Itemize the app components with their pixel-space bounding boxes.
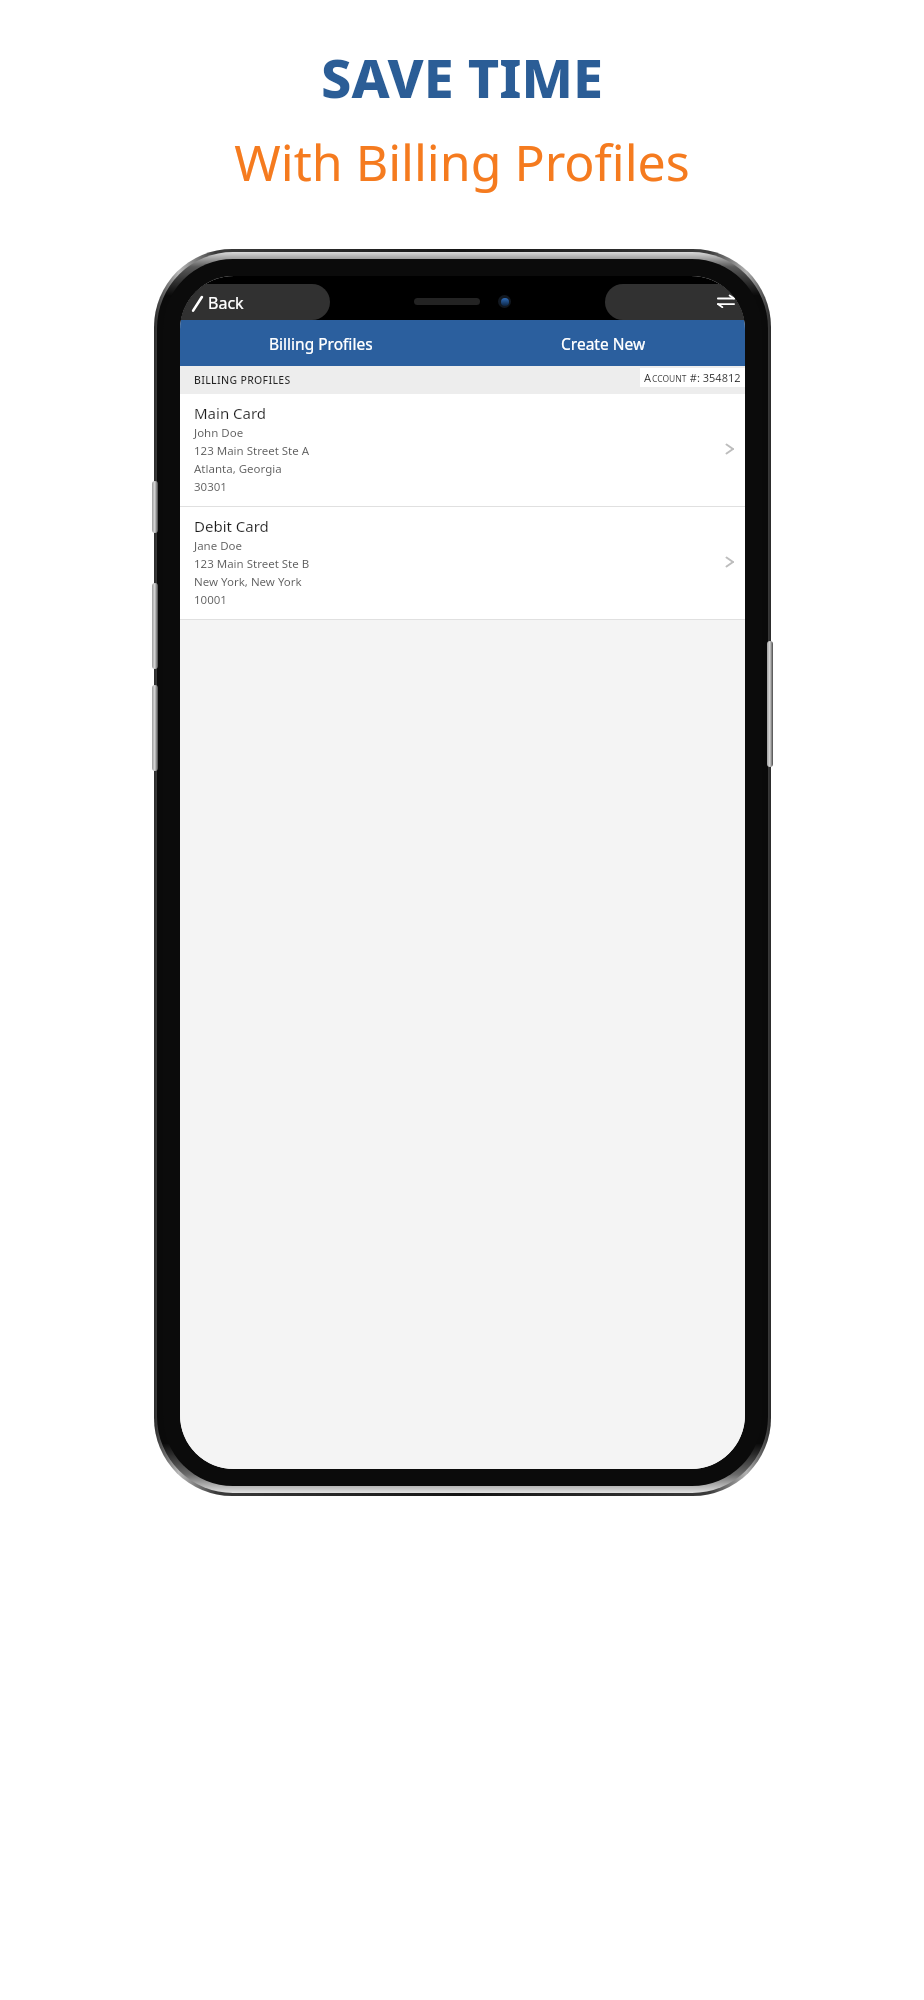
staticText: A	[644, 370, 652, 385]
staticText: 123 Main Street Ste A	[194, 443, 310, 459]
staticText: Jane Doe	[194, 538, 243, 554]
button[interactable]: Debit Card	[180, 507, 745, 619]
button[interactable]: Create New	[462, 320, 745, 366]
staticText: Main Card	[194, 403, 267, 423]
staticText: With Billing Profiles	[234, 128, 690, 196]
staticText: 10001	[194, 592, 227, 608]
button[interactable]: Transfer	[713, 288, 739, 314]
staticText: 123 Main Street Ste B	[194, 556, 310, 572]
staticText: CCOUNT	[652, 373, 687, 385]
staticText: Create New	[561, 333, 646, 354]
staticText: New York, New York	[194, 574, 302, 590]
staticText: #: 354812	[687, 370, 741, 385]
button[interactable]: Main Card	[180, 394, 745, 506]
button[interactable]: Billing Profiles	[180, 320, 462, 366]
staticText: BILLING PROFILES	[194, 373, 291, 387]
staticText: Back	[208, 292, 244, 314]
button[interactable]: Back	[188, 289, 248, 317]
staticText: Billing Profiles	[269, 333, 373, 354]
staticText: SAVE TIME	[321, 40, 603, 114]
staticText: Atlanta, Georgia	[194, 461, 282, 477]
staticText: Debit Card	[194, 516, 269, 536]
staticText: John Doe	[194, 425, 244, 441]
staticText: 30301	[194, 479, 227, 495]
